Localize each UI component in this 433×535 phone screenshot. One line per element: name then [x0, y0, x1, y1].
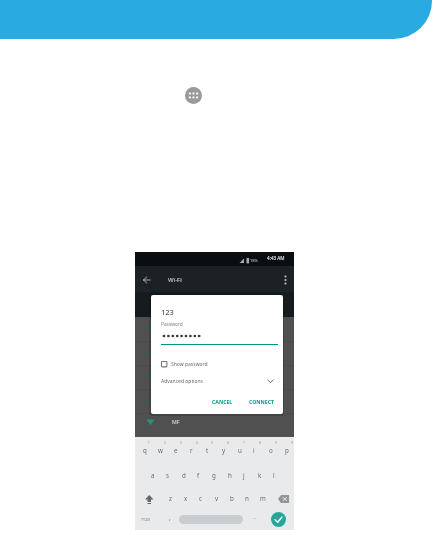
staticText: m [260, 494, 266, 502]
staticText: Wi-Fi [168, 276, 182, 284]
staticText: i [253, 446, 255, 454]
staticText: z [169, 494, 172, 502]
staticText: CANCEL [212, 398, 233, 405]
button[interactable] [151, 375, 283, 387]
staticText: Advanced options [161, 378, 204, 385]
staticText: Show password [171, 361, 208, 368]
staticText: 123 [161, 307, 174, 317]
staticText: o [269, 446, 273, 454]
staticText: 6 [227, 441, 229, 445]
staticText: 8 [259, 441, 261, 445]
button[interactable] [161, 359, 201, 369]
staticText: 4:43 AM [267, 255, 285, 261]
staticText: Password [161, 321, 183, 328]
staticText: w [158, 446, 163, 454]
staticText: h [228, 471, 232, 479]
staticText: 3 [180, 441, 182, 445]
staticText: t [206, 446, 209, 454]
staticText: k [258, 471, 262, 479]
staticText: v [215, 494, 219, 502]
staticText: q [143, 446, 147, 454]
staticText: 2 [164, 441, 166, 445]
staticText: x [184, 494, 188, 502]
staticText: 18% [250, 258, 258, 263]
staticText: b [230, 494, 234, 502]
staticText: 7 [243, 441, 245, 445]
staticText: r [190, 446, 193, 454]
staticText: u [238, 446, 242, 454]
button[interactable]: CONNECT [243, 394, 279, 408]
staticText: 0 [291, 441, 293, 445]
button[interactable] [185, 87, 202, 104]
staticText: l [273, 471, 275, 479]
staticText: y [222, 446, 226, 454]
staticText: c [199, 494, 202, 502]
staticText: CONNECT [249, 398, 274, 405]
staticText: ?123 [141, 517, 151, 523]
staticText: s [166, 471, 169, 479]
staticText: a [151, 471, 155, 479]
staticText: 1 [148, 441, 150, 445]
staticText: n [245, 494, 249, 502]
staticText: d [182, 471, 186, 479]
button[interactable]: CANCEL [207, 394, 237, 408]
staticText: , [169, 513, 171, 521]
staticText: MF [172, 418, 180, 425]
staticText: j [243, 471, 245, 479]
staticText: p [285, 446, 289, 454]
staticText: 9 [275, 441, 277, 445]
staticText: e [174, 446, 178, 454]
staticText: f [197, 471, 200, 479]
staticText: g [212, 471, 216, 479]
staticText: 4 [196, 441, 198, 445]
button[interactable] [271, 512, 286, 527]
staticText: . [254, 512, 256, 520]
staticText: 5 [211, 441, 213, 445]
